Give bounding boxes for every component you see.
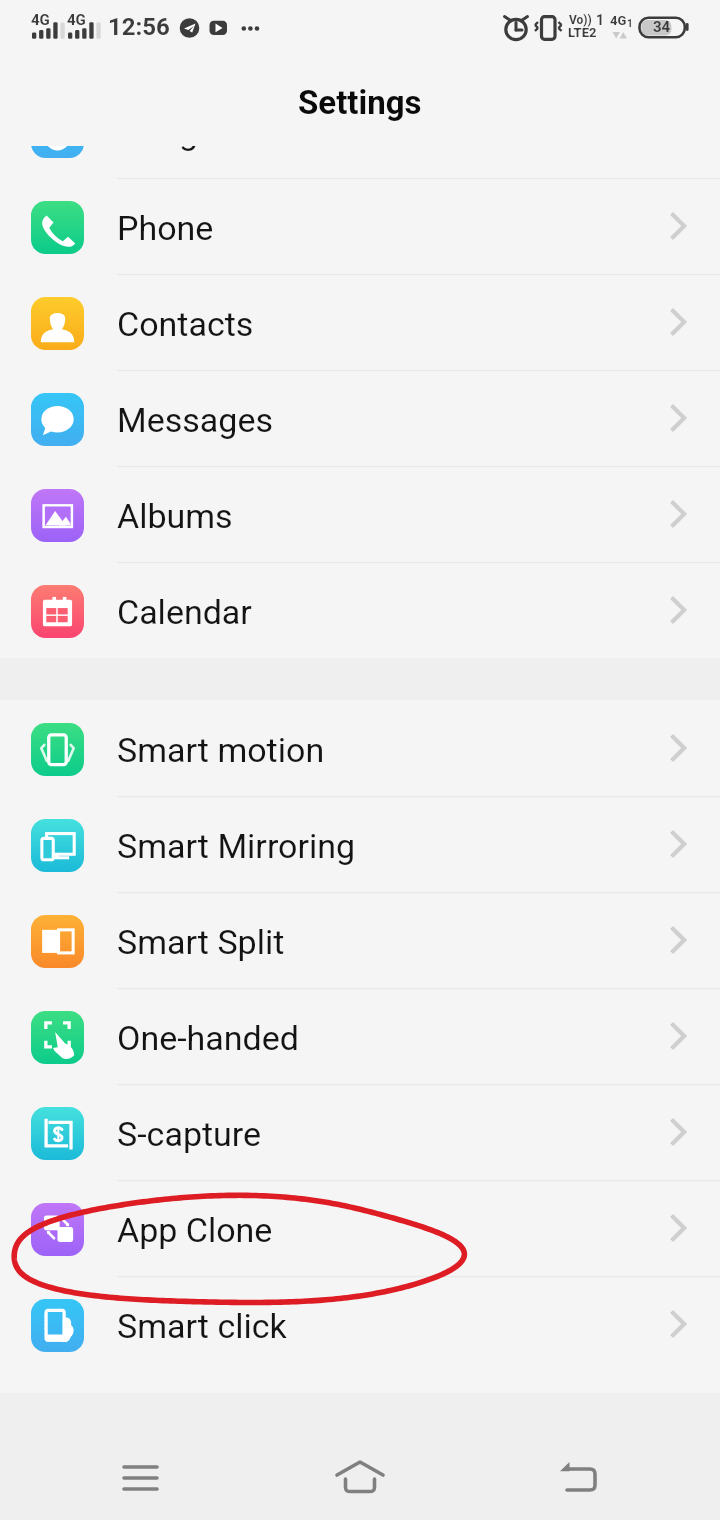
staticText: S-capture bbox=[117, 1114, 262, 1154]
staticText: App Clone bbox=[117, 1210, 273, 1250]
button[interactable]: Recent apps bbox=[96, 1422, 185, 1511]
button[interactable]: Google bbox=[0, 146, 720, 178]
staticText: 34 bbox=[653, 18, 671, 36]
staticText: Smart motion bbox=[117, 730, 325, 770]
staticText: 1 bbox=[596, 12, 605, 28]
staticText: 12:56 bbox=[108, 13, 170, 41]
button[interactable]: Calendar bbox=[0, 562, 720, 658]
staticText: Smart click bbox=[117, 1306, 287, 1346]
button[interactable]: Contacts bbox=[0, 274, 720, 370]
staticText: Phone bbox=[117, 208, 214, 248]
button[interactable]: Messages bbox=[0, 370, 720, 466]
staticText: Smart Split bbox=[117, 922, 285, 962]
button[interactable]: Phone bbox=[0, 178, 720, 274]
staticText: Albums bbox=[117, 496, 233, 536]
staticText: Settings bbox=[298, 83, 422, 122]
staticText: One-handed bbox=[117, 1018, 299, 1058]
staticText: Calendar bbox=[117, 592, 252, 632]
button[interactable]: One-handed bbox=[0, 988, 720, 1084]
button[interactable]: Home bbox=[316, 1422, 405, 1511]
button[interactable]: Smart click bbox=[0, 1276, 720, 1372]
button[interactable]: Smart Split bbox=[0, 892, 720, 988]
staticText: 4G bbox=[31, 11, 50, 29]
button[interactable]: App Clone bbox=[0, 1180, 720, 1276]
staticText: Vo)) bbox=[569, 13, 592, 27]
button[interactable]: S-capture bbox=[0, 1084, 720, 1180]
staticText: Google bbox=[117, 146, 225, 152]
staticText: Messages bbox=[117, 400, 273, 440]
staticText: Smart Mirroring bbox=[117, 826, 356, 866]
staticText: 4G bbox=[67, 11, 86, 29]
button[interactable]: Smart Mirroring bbox=[0, 796, 720, 892]
staticText: Contacts bbox=[117, 304, 254, 344]
staticText: 4G bbox=[610, 13, 627, 28]
button[interactable]: Back bbox=[535, 1422, 624, 1511]
staticText: 1 bbox=[627, 18, 633, 30]
button[interactable]: Smart motion bbox=[0, 700, 720, 796]
staticText: LTE2 bbox=[568, 25, 597, 40]
button[interactable]: Albums bbox=[0, 466, 720, 562]
